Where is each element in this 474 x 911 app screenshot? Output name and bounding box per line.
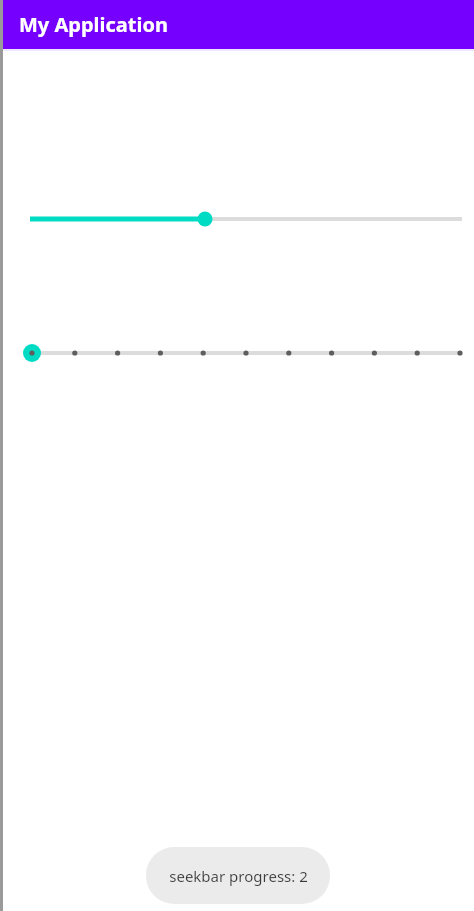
staticText: seekbar progress: 2 (169, 866, 308, 886)
button[interactable]: Seek bar (14, 199, 474, 239)
button[interactable]: seekbar progress: 2 (146, 847, 330, 904)
button[interactable]: My Application (3, 0, 474, 49)
button[interactable]: Discrete seek bar (14, 333, 474, 373)
staticText: My Application (19, 11, 168, 38)
